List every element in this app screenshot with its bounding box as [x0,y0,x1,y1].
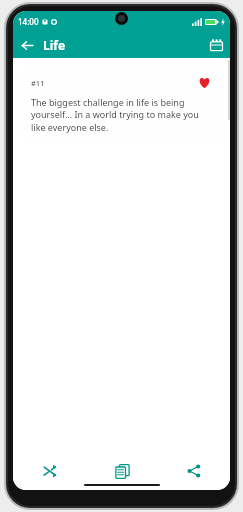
button[interactable]: Archive [205,34,227,56]
button[interactable]: Favorite [197,75,212,90]
button[interactable]: Copy [86,458,158,484]
staticText: The biggest challenge in life is being y… [31,96,212,134]
button[interactable]: Share [158,458,230,484]
staticText: 14:00 [18,16,39,27]
button[interactable]: Shuffle [13,458,86,484]
staticText: #11 [31,78,45,88]
button[interactable]: Back [16,34,38,56]
staticText: Life [43,37,66,53]
button[interactable]: #11 [21,67,222,142]
